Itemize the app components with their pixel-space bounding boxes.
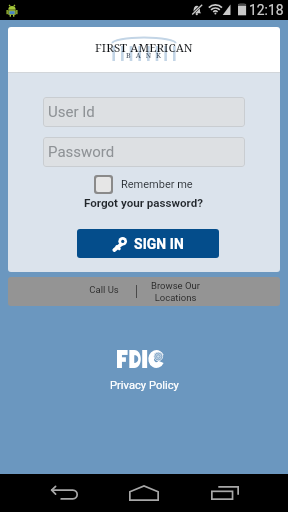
staticText: Remember me bbox=[121, 178, 193, 191]
button[interactable]: Recent apps bbox=[197, 474, 253, 512]
staticText: B A N K bbox=[126, 51, 163, 61]
button[interactable]: Forgot your password? bbox=[84, 196, 204, 210]
button[interactable]: Password bbox=[43, 137, 245, 167]
button[interactable]: Browse Our Locations bbox=[135, 277, 215, 306]
staticText: FIRST AMERICAN bbox=[95, 40, 193, 55]
button[interactable]: Back bbox=[36, 474, 92, 512]
staticText: Call Us bbox=[89, 284, 119, 295]
staticText: 12:18 bbox=[249, 2, 284, 18]
button[interactable]: Privacy Policy bbox=[110, 379, 179, 392]
button[interactable]: User Id bbox=[43, 97, 245, 127]
staticText: Password bbox=[48, 143, 115, 161]
staticText: User Id bbox=[48, 103, 95, 121]
button[interactable]: Call Us bbox=[74, 277, 134, 306]
staticText: SIGN IN bbox=[134, 236, 184, 252]
button[interactable]: SIGN IN bbox=[77, 229, 219, 258]
staticText: Browse Our Locations bbox=[151, 280, 200, 303]
button[interactable]: Remember me bbox=[94, 175, 193, 194]
button[interactable]: Home bbox=[116, 474, 172, 512]
